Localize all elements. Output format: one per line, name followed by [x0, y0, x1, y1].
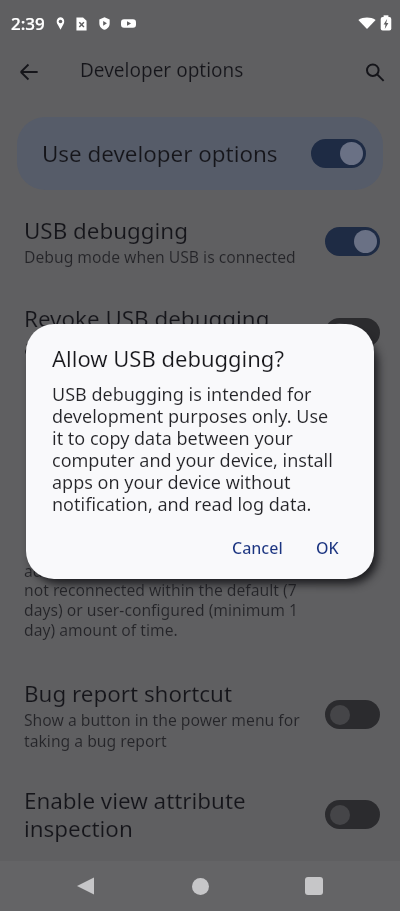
staticText: Show a button in the power menu for [24, 709, 300, 730]
staticText: Enable view attribute inspection [24, 785, 246, 844]
staticText: Use developer options [42, 138, 278, 169]
staticText: Developer options [80, 57, 244, 83]
button[interactable]: USB debugging [0, 203, 400, 279]
button[interactable]: Revoke USB debugging authorizations [0, 291, 400, 374]
button[interactable]: Use developer options [17, 117, 383, 190]
button[interactable]: Toggle [325, 318, 380, 347]
staticText: Allow USB debugging? [52, 343, 284, 373]
button[interactable]: OK [304, 528, 351, 568]
staticText: Select debug app [24, 866, 206, 897]
button[interactable]: Enable view attribute inspection [0, 773, 400, 856]
staticText: Bug report shortcut [24, 678, 232, 709]
staticText: USB debugging is intended for developmen… [52, 382, 340, 517]
staticText: 2:39 [11, 12, 45, 35]
button[interactable]: Recents [290, 862, 338, 910]
staticText: OK [316, 537, 339, 559]
staticText: Debug mode when USB is connected [24, 246, 296, 267]
staticText: Cancel [232, 537, 283, 559]
button[interactable]: Search [350, 48, 398, 96]
button[interactable]: Bug report shortcut [0, 666, 400, 763]
button[interactable]: Cancel [220, 528, 295, 568]
button[interactable]: Back [61, 862, 109, 910]
button[interactable]: Home [176, 862, 224, 910]
button[interactable]: Toggle [325, 227, 380, 256]
button[interactable]: Back [5, 48, 53, 96]
staticText: USB debugging [24, 215, 188, 246]
staticText: taking a bug report [24, 730, 167, 751]
staticText: ad… not reconnected within the default (… [24, 560, 298, 641]
button[interactable]: Toggle [325, 800, 380, 829]
staticText: Revoke USB debugging authorizations [24, 303, 270, 362]
button[interactable]: Toggle [325, 700, 380, 729]
button[interactable]: Toggle [311, 139, 366, 168]
